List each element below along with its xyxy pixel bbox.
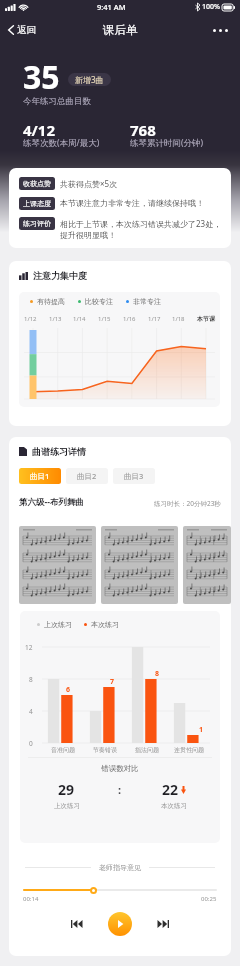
- staticText: 返回: [17, 24, 36, 36]
- staticText: 曲谱练习详情: [32, 446, 86, 457]
- staticText: 35: [23, 55, 60, 99]
- staticText: 相比于上节课，本次练习错误共减少了23处，提升很明显哦！: [60, 218, 223, 240]
- staticText: 练习时长：20分钟23秒: [154, 499, 221, 508]
- staticText: 今年练习总曲目数: [23, 96, 91, 107]
- button[interactable]: Previous track: [66, 915, 88, 933]
- staticText: 7: [110, 677, 115, 687]
- staticText: 老师指导意见: [99, 863, 141, 872]
- staticText: 新增3曲: [75, 74, 104, 85]
- staticText: 00:25: [201, 895, 217, 903]
- staticText: 非常专注: [133, 297, 161, 306]
- button[interactable]: 曲目1: [19, 468, 61, 484]
- staticText: 9:41 AM: [97, 2, 126, 12]
- staticText: 4/12: [23, 120, 55, 140]
- staticText: 曲目1: [30, 471, 50, 481]
- staticText: 1/16: [123, 315, 136, 323]
- staticText: 练琴累计时间(分钟): [130, 137, 204, 149]
- staticText: 上次练习: [44, 620, 72, 629]
- staticText: 连贯性问题: [174, 746, 204, 754]
- staticText: 有待提高: [37, 297, 65, 306]
- staticText: 1/17: [148, 315, 161, 323]
- staticText: 768: [130, 120, 156, 140]
- staticText: 6: [66, 685, 71, 695]
- staticText: 1/14: [73, 315, 86, 323]
- staticText: 练习评价: [23, 219, 51, 228]
- staticText: 0: [29, 739, 33, 748]
- button[interactable]: Sheet music page: [19, 526, 96, 604]
- staticText: 12: [25, 643, 33, 652]
- staticText: 收获点赞: [23, 179, 51, 188]
- staticText: 本次练习: [161, 802, 187, 810]
- staticText: 1/15: [98, 315, 111, 323]
- button[interactable]: Sheet music page: [101, 526, 178, 604]
- button[interactable]: Play: [108, 912, 132, 936]
- staticText: 4: [29, 707, 33, 716]
- staticText: 8: [155, 669, 160, 679]
- staticText: 22: [162, 780, 179, 799]
- staticText: 00:14: [23, 895, 39, 903]
- staticText: 练琴次数(本周/最大): [23, 137, 100, 149]
- staticText: 节奏错误: [93, 746, 117, 754]
- staticText: 比较专注: [85, 297, 113, 306]
- button[interactable]: 返回: [5, 20, 39, 40]
- button[interactable]: Next track: [152, 915, 174, 933]
- staticText: 上课态度: [23, 199, 51, 208]
- staticText: 本次练习: [91, 620, 119, 629]
- staticText: 共获得点赞×5次: [60, 178, 118, 189]
- staticText: 注意力集中度: [33, 270, 87, 281]
- staticText: 100%: [202, 2, 220, 12]
- staticText: 1/13: [49, 315, 62, 323]
- staticText: 8: [29, 675, 33, 684]
- staticText: 1: [199, 725, 204, 735]
- staticText: 课后单: [103, 23, 138, 37]
- staticText: 曲目3: [124, 471, 144, 481]
- staticText: 曲目2: [77, 471, 97, 481]
- staticText: 29: [58, 780, 75, 799]
- staticText: 本节课注意力非常专注，请继续保持哦！: [60, 198, 204, 208]
- button[interactable]: 曲目2: [66, 468, 108, 484]
- staticText: 音准问题: [51, 746, 75, 754]
- staticText: 本节课: [197, 315, 215, 323]
- staticText: :: [118, 782, 122, 797]
- staticText: 指法问题: [135, 746, 159, 754]
- button[interactable]: More options: [210, 26, 231, 35]
- staticText: 1/12: [24, 315, 37, 323]
- staticText: 错误数对比: [20, 764, 220, 773]
- staticText: 上次练习: [54, 802, 80, 810]
- staticText: 1/18: [172, 315, 185, 323]
- staticText: 第六级--布列舞曲: [19, 496, 84, 508]
- button[interactable]: 曲目3: [113, 468, 155, 484]
- button[interactable]: Sheet music page: [183, 526, 231, 604]
